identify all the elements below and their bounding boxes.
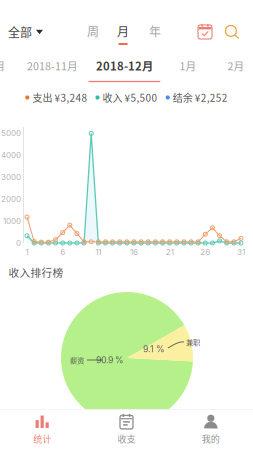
staticText: 全部 bbox=[8, 23, 32, 41]
button[interactable]: 2月 bbox=[221, 58, 251, 88]
staticText: 收入排行榜 bbox=[8, 264, 63, 280]
staticText: 月 bbox=[117, 22, 129, 40]
staticText: 年 bbox=[149, 22, 161, 40]
button[interactable]: 周 bbox=[80, 18, 106, 52]
staticText: 薪资 bbox=[70, 355, 84, 365]
staticText: 收支 bbox=[117, 432, 135, 445]
staticText: 9.1 % bbox=[143, 344, 165, 354]
staticText: 周 bbox=[87, 22, 99, 40]
button[interactable]: 2018-10月 bbox=[0, 58, 11, 88]
staticText: 支出 ¥3,248 bbox=[32, 90, 87, 105]
staticText: 1 bbox=[25, 247, 28, 257]
staticText: 6 bbox=[60, 247, 65, 257]
staticText: 5000 bbox=[1, 128, 21, 138]
staticText: 3000 bbox=[1, 172, 21, 182]
staticText: 1月 bbox=[179, 58, 196, 73]
staticText: 16 bbox=[130, 247, 138, 257]
button[interactable]: Calendar bbox=[188, 15, 222, 49]
staticText: 4000 bbox=[1, 150, 21, 160]
staticText: 2018-12月 bbox=[96, 57, 153, 74]
button[interactable]: 年 bbox=[142, 18, 168, 52]
staticText: 结余 ¥2,252 bbox=[173, 90, 228, 105]
button[interactable]: Search bbox=[215, 15, 249, 49]
staticText: 26 bbox=[200, 247, 210, 257]
staticText: 兼职 bbox=[186, 337, 200, 347]
staticText: 0 bbox=[16, 238, 21, 248]
button[interactable]: 统计 bbox=[0, 409, 84, 450]
button[interactable]: 2018-12月 bbox=[87, 58, 161, 88]
staticText: 31 bbox=[237, 247, 245, 257]
staticText: 2月 bbox=[227, 58, 244, 73]
staticText: 收入 ¥5,500 bbox=[103, 90, 158, 105]
staticText: 2018-11月 bbox=[27, 58, 78, 73]
button[interactable]: 1月 bbox=[173, 58, 203, 88]
staticText: 2018-10月 bbox=[0, 58, 5, 73]
staticText: 21 bbox=[166, 247, 174, 257]
staticText: 90.9 % bbox=[96, 355, 124, 365]
button[interactable]: 收支 bbox=[84, 409, 169, 450]
staticText: 11 bbox=[95, 247, 101, 257]
button[interactable]: 我的 bbox=[169, 409, 253, 450]
staticText: 统计 bbox=[33, 432, 51, 445]
staticText: 2000 bbox=[1, 194, 21, 204]
button[interactable]: 2018-11月 bbox=[21, 58, 83, 88]
staticText: 1000 bbox=[3, 216, 21, 226]
button[interactable]: 月 bbox=[110, 18, 136, 52]
button[interactable]: 全部 bbox=[0, 12, 58, 52]
staticText: 我的 bbox=[202, 432, 220, 445]
